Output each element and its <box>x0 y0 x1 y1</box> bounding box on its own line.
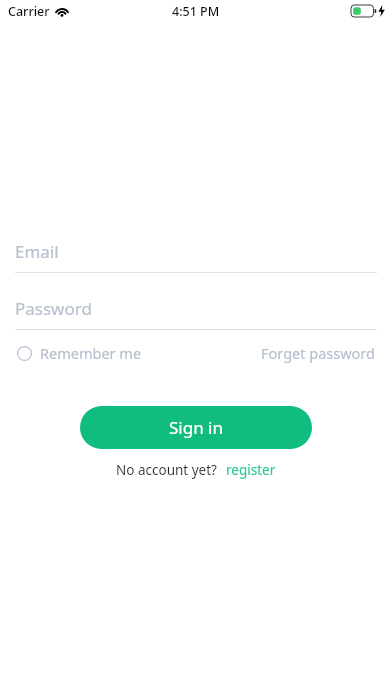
staticText: Remember me <box>40 343 142 363</box>
button[interactable]: register <box>226 461 276 479</box>
button[interactable]: Password <box>15 295 377 330</box>
staticText: register <box>226 461 276 479</box>
staticText: Email <box>15 240 59 263</box>
staticText: Sign in <box>169 416 223 439</box>
button[interactable]: Remember me <box>15 339 144 367</box>
button[interactable]: Sign in <box>80 406 312 449</box>
other: Battery charging <box>351 5 376 17</box>
other: Wi-Fi signal <box>55 6 69 17</box>
staticText: Carrier <box>8 3 50 20</box>
staticText: Password <box>15 297 92 320</box>
staticText: 4:51 PM <box>172 3 220 20</box>
button[interactable]: Email <box>15 238 377 273</box>
staticText: Forget password <box>261 343 375 363</box>
staticText: No account yet? <box>116 461 217 479</box>
button[interactable]: Forget password <box>259 339 377 367</box>
